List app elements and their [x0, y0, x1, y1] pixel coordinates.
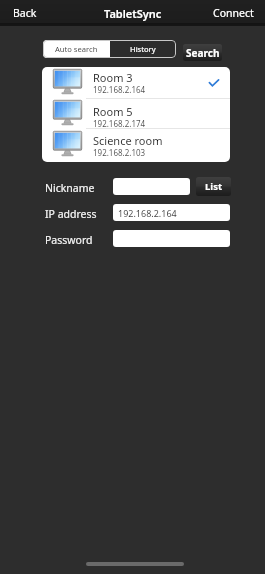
staticText: 192.168.2.164 — [118, 207, 177, 219]
staticText: Password — [45, 233, 93, 247]
button[interactable]: Room 5 — [42, 99, 230, 128]
staticText: Connect — [213, 6, 254, 20]
staticText: Search — [186, 46, 220, 60]
button[interactable]: Science room — [42, 129, 230, 162]
staticText: Science room — [93, 133, 163, 148]
staticText: Room 3 — [93, 70, 133, 85]
staticText: IP address — [45, 207, 97, 221]
staticText: History — [130, 44, 156, 54]
staticText: Room 5 — [93, 104, 133, 119]
staticText: 192.168.2.164 — [93, 84, 146, 95]
staticText: Back — [13, 6, 37, 20]
button[interactable] — [113, 230, 230, 247]
button[interactable] — [113, 178, 190, 195]
button[interactable]: Connect — [203, 2, 265, 24]
staticText: Nickname — [45, 181, 95, 195]
button[interactable]: History — [110, 40, 176, 58]
button[interactable]: List — [196, 177, 231, 196]
button[interactable]: Back — [0, 2, 47, 24]
staticText: 192.168.2.103 — [93, 147, 146, 158]
staticText: List — [205, 180, 223, 193]
staticText: Auto search — [55, 44, 98, 54]
other: Selected — [209, 79, 219, 87]
staticText: 192.168.2.174 — [93, 118, 146, 129]
button[interactable]: 192.168.2.164 — [113, 204, 230, 221]
button[interactable]: Room 3 — [42, 67, 230, 98]
staticText: TabletSync — [104, 6, 162, 21]
button[interactable]: Search — [183, 44, 222, 61]
button[interactable]: Auto search — [43, 40, 110, 58]
